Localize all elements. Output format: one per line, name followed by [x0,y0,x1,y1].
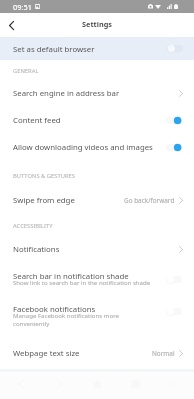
staticText: Search bar in notification shade [13,271,129,282]
button[interactable]: Swipe from edge [0,187,194,214]
button[interactable]: Back [2,16,20,34]
staticText: Notifications [13,244,60,255]
staticText: Swipe from edge [13,195,75,206]
button[interactable]: Allow downloading videos and images [0,134,194,161]
button[interactable]: Webpage text size [0,340,194,367]
staticText: Manage Facebook notifications more [13,311,119,319]
staticText: ACCESSIBILITY [13,222,53,230]
button[interactable]: Set as default browser [0,37,194,60]
staticText: Content feed [13,115,61,126]
staticText: Search engine in address bar [13,88,120,99]
staticText: GENERAL [13,67,39,75]
staticText: Go back/forward [124,196,175,205]
staticText: Show link to search bar in the notificat… [13,278,151,286]
staticText: conveniently [13,319,50,327]
button[interactable]: Notifications [0,236,194,263]
button[interactable]: Facebook notifications [0,297,194,336]
staticText: Set as default browser [13,44,95,55]
staticText: Normal [152,349,175,358]
button[interactable]: Search bar in notification shade [0,264,194,295]
button[interactable]: Content feed [0,107,194,134]
staticText: Settings [82,19,112,29]
staticText: Webpage text size [13,348,80,359]
staticText: 09:51 [13,2,32,12]
button[interactable]: Search engine in address bar [0,80,194,107]
staticText: BUTTONS & GESTURES [13,172,75,180]
staticText: Facebook notifications [13,304,96,315]
staticText: Allow downloading videos and images [13,142,153,153]
